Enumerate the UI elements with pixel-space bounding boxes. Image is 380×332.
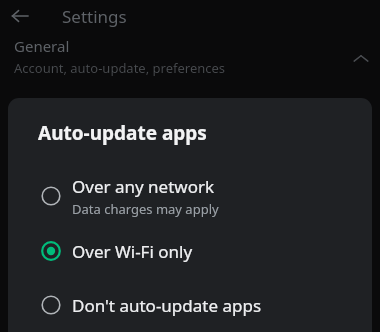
staticText: Auto-update apps <box>38 120 207 146</box>
staticText: Over any network <box>72 175 215 198</box>
staticText: Settings <box>62 5 127 28</box>
staticText: Don't auto-update apps <box>72 294 262 317</box>
button[interactable]: Over Wi-Fi only <box>8 224 372 278</box>
staticText: Over Wi-Fi only <box>72 240 193 263</box>
staticText: Data charges may apply <box>72 200 219 218</box>
button[interactable]: Don't auto-update apps <box>8 278 372 332</box>
button[interactable]: Back <box>6 2 34 30</box>
staticText: General <box>14 36 70 56</box>
staticText: Account, auto-update, preferences <box>14 59 226 77</box>
button[interactable]: Collapse <box>348 46 374 72</box>
button[interactable]: Over any network <box>8 168 372 224</box>
